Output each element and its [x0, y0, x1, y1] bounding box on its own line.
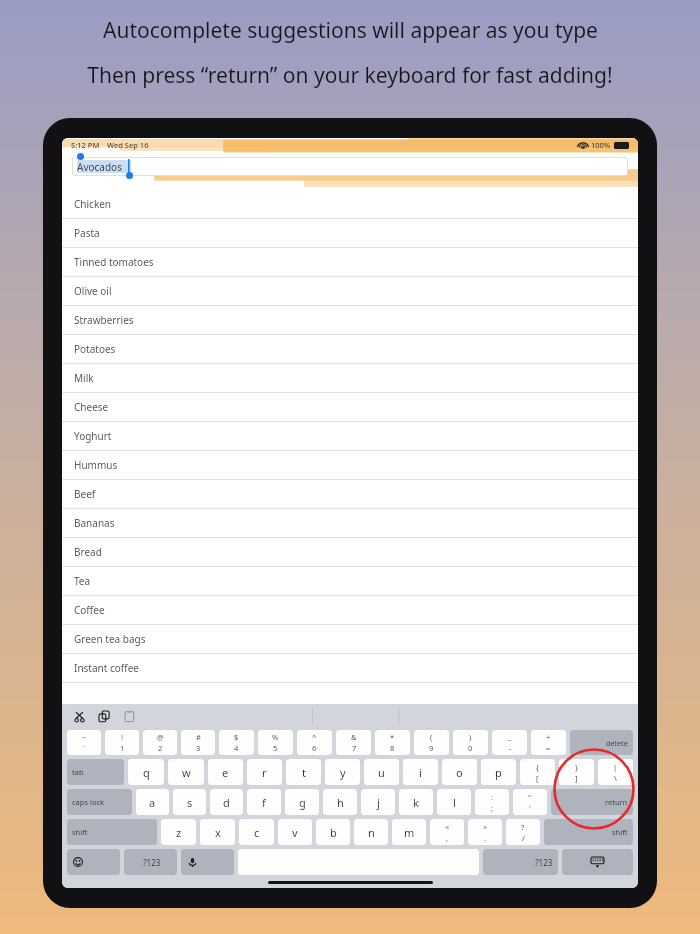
button[interactable]: Green tea bags — [62, 625, 638, 653]
button[interactable]: l — [437, 789, 471, 815]
button[interactable]: Hummus — [62, 451, 638, 479]
staticText: Chicken — [74, 197, 112, 211]
button[interactable]: d — [210, 789, 243, 815]
button[interactable]: u — [364, 759, 399, 785]
button[interactable]: Cut — [70, 707, 88, 725]
button[interactable]: ^ — [297, 730, 332, 755]
button[interactable]: > — [468, 819, 502, 845]
button[interactable]: .?123 — [483, 849, 558, 875]
button[interactable]: Yoghurt — [62, 422, 638, 450]
staticText: Cheese — [74, 400, 109, 414]
button[interactable]: % — [258, 730, 293, 755]
button[interactable]: Hide keyboard — [562, 849, 633, 875]
button[interactable]: + — [531, 730, 566, 755]
button[interactable]: : — [475, 789, 509, 815]
button[interactable]: tab — [67, 759, 124, 785]
button[interactable]: Tinned tomatoes — [62, 248, 638, 276]
button[interactable]: caps lock — [67, 789, 132, 815]
button[interactable]: # — [181, 730, 215, 755]
button[interactable]: Cheese — [62, 393, 638, 421]
button[interactable]: n — [354, 819, 388, 845]
button[interactable]: ( — [414, 730, 449, 755]
button[interactable]: Potatoes — [62, 335, 638, 363]
staticText: 6 — [312, 743, 317, 753]
staticText: f — [262, 795, 266, 810]
button[interactable]: Copy — [95, 707, 113, 725]
staticText: / — [522, 833, 525, 843]
button[interactable]: h — [323, 789, 357, 815]
button[interactable]: Avocados — [72, 157, 628, 176]
button[interactable]: q — [128, 759, 164, 785]
button[interactable]: j — [361, 789, 395, 815]
staticText: n — [368, 825, 375, 840]
staticText: i — [419, 765, 422, 780]
staticText: 7 — [352, 743, 357, 753]
button[interactable]: g — [285, 789, 319, 815]
button[interactable]: * — [375, 730, 410, 755]
button[interactable]: o — [442, 759, 477, 785]
staticText: x — [215, 825, 221, 840]
button[interactable]: _ — [492, 730, 527, 755]
button[interactable]: ! — [105, 730, 139, 755]
button[interactable]: < — [430, 819, 464, 845]
staticText: + — [546, 732, 551, 742]
button[interactable]: & — [336, 730, 371, 755]
button[interactable]: Pasta — [62, 219, 638, 247]
button[interactable]: } — [559, 759, 594, 785]
staticText: : — [491, 792, 494, 802]
staticText: z — [176, 825, 182, 840]
button[interactable]: Tea — [62, 567, 638, 595]
button[interactable]: c — [239, 819, 274, 845]
button[interactable]: Milk — [62, 364, 638, 392]
button[interactable]: v — [278, 819, 312, 845]
button[interactable]: Bananas — [62, 509, 638, 537]
button[interactable]: delete — [570, 730, 633, 755]
button[interactable]: Olive oil — [62, 277, 638, 305]
button[interactable]: f — [247, 789, 281, 815]
button[interactable]: shift — [67, 819, 157, 845]
staticText: 8 — [390, 743, 395, 753]
button[interactable]: Strawberries — [62, 306, 638, 334]
button[interactable]: { — [520, 759, 555, 785]
staticText: & — [351, 732, 357, 742]
staticText: . — [484, 833, 487, 843]
button[interactable]: i — [403, 759, 438, 785]
button[interactable]: Dictation — [181, 849, 234, 875]
button[interactable]: m — [392, 819, 426, 845]
staticText: | — [613, 762, 618, 772]
staticText: w — [182, 765, 191, 780]
button[interactable]: x — [200, 819, 235, 845]
button[interactable]: " — [513, 789, 547, 815]
staticText: Tea — [74, 574, 91, 588]
button[interactable]: ) — [453, 730, 488, 755]
button[interactable]: r — [247, 759, 282, 785]
button[interactable]: Instant coffee — [62, 654, 638, 682]
button[interactable]: | — [598, 759, 633, 785]
button[interactable]: Emoji — [67, 849, 120, 875]
button[interactable]: b — [316, 819, 350, 845]
button[interactable]: p — [481, 759, 516, 785]
button[interactable]: shift — [544, 819, 633, 845]
button[interactable]: $ — [219, 730, 254, 755]
button[interactable]: w — [168, 759, 204, 785]
button[interactable]: Coffee — [62, 596, 638, 624]
button[interactable]: Beef — [62, 480, 638, 508]
button[interactable]: @ — [143, 730, 177, 755]
staticText: 9 — [429, 743, 434, 753]
button[interactable]: z — [161, 819, 196, 845]
button[interactable]: e — [208, 759, 243, 785]
button[interactable]: a — [136, 789, 169, 815]
button[interactable]: return — [551, 789, 633, 815]
button[interactable]: Chicken — [62, 190, 638, 218]
button[interactable]: ~ — [67, 730, 101, 755]
button[interactable]: .?123 — [124, 849, 177, 875]
button[interactable]: Bread — [62, 538, 638, 566]
button[interactable]: k — [399, 789, 433, 815]
staticText: Hummus — [74, 458, 118, 472]
button[interactable]: y — [325, 759, 360, 785]
button[interactable]: ? — [506, 819, 540, 845]
button[interactable]: s — [173, 789, 206, 815]
button[interactable]: t — [286, 759, 321, 785]
button[interactable]: Paste — [120, 707, 138, 725]
